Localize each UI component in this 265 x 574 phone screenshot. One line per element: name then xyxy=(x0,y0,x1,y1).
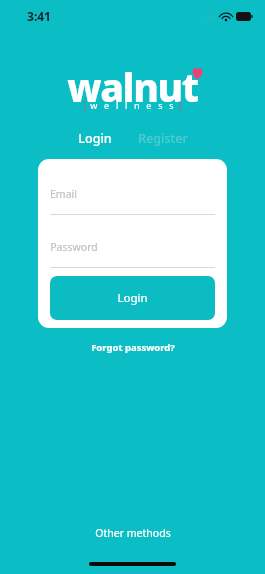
staticText: Password xyxy=(50,240,98,254)
staticText: Other methods xyxy=(95,526,171,540)
staticText: Register xyxy=(138,130,188,147)
staticText: ] xyxy=(178,97,182,112)
staticText: Login xyxy=(78,130,112,147)
staticText: walnut xyxy=(67,60,198,113)
staticText: 3:41 xyxy=(27,8,51,24)
staticText: w e l l n e s s xyxy=(90,99,176,111)
staticText: Forgot password? xyxy=(91,341,175,354)
button[interactable]: Password xyxy=(50,240,215,268)
button[interactable]: Login xyxy=(50,276,215,320)
staticText: [ xyxy=(83,97,87,112)
button[interactable]: Email xyxy=(50,187,215,215)
staticText: Email xyxy=(50,187,77,201)
button[interactable]: Other methods xyxy=(87,522,179,544)
button[interactable]: Forgot password? xyxy=(83,338,183,357)
staticText: Login xyxy=(117,290,148,306)
button[interactable]: Login xyxy=(72,127,118,150)
button[interactable]: Register xyxy=(132,127,194,150)
